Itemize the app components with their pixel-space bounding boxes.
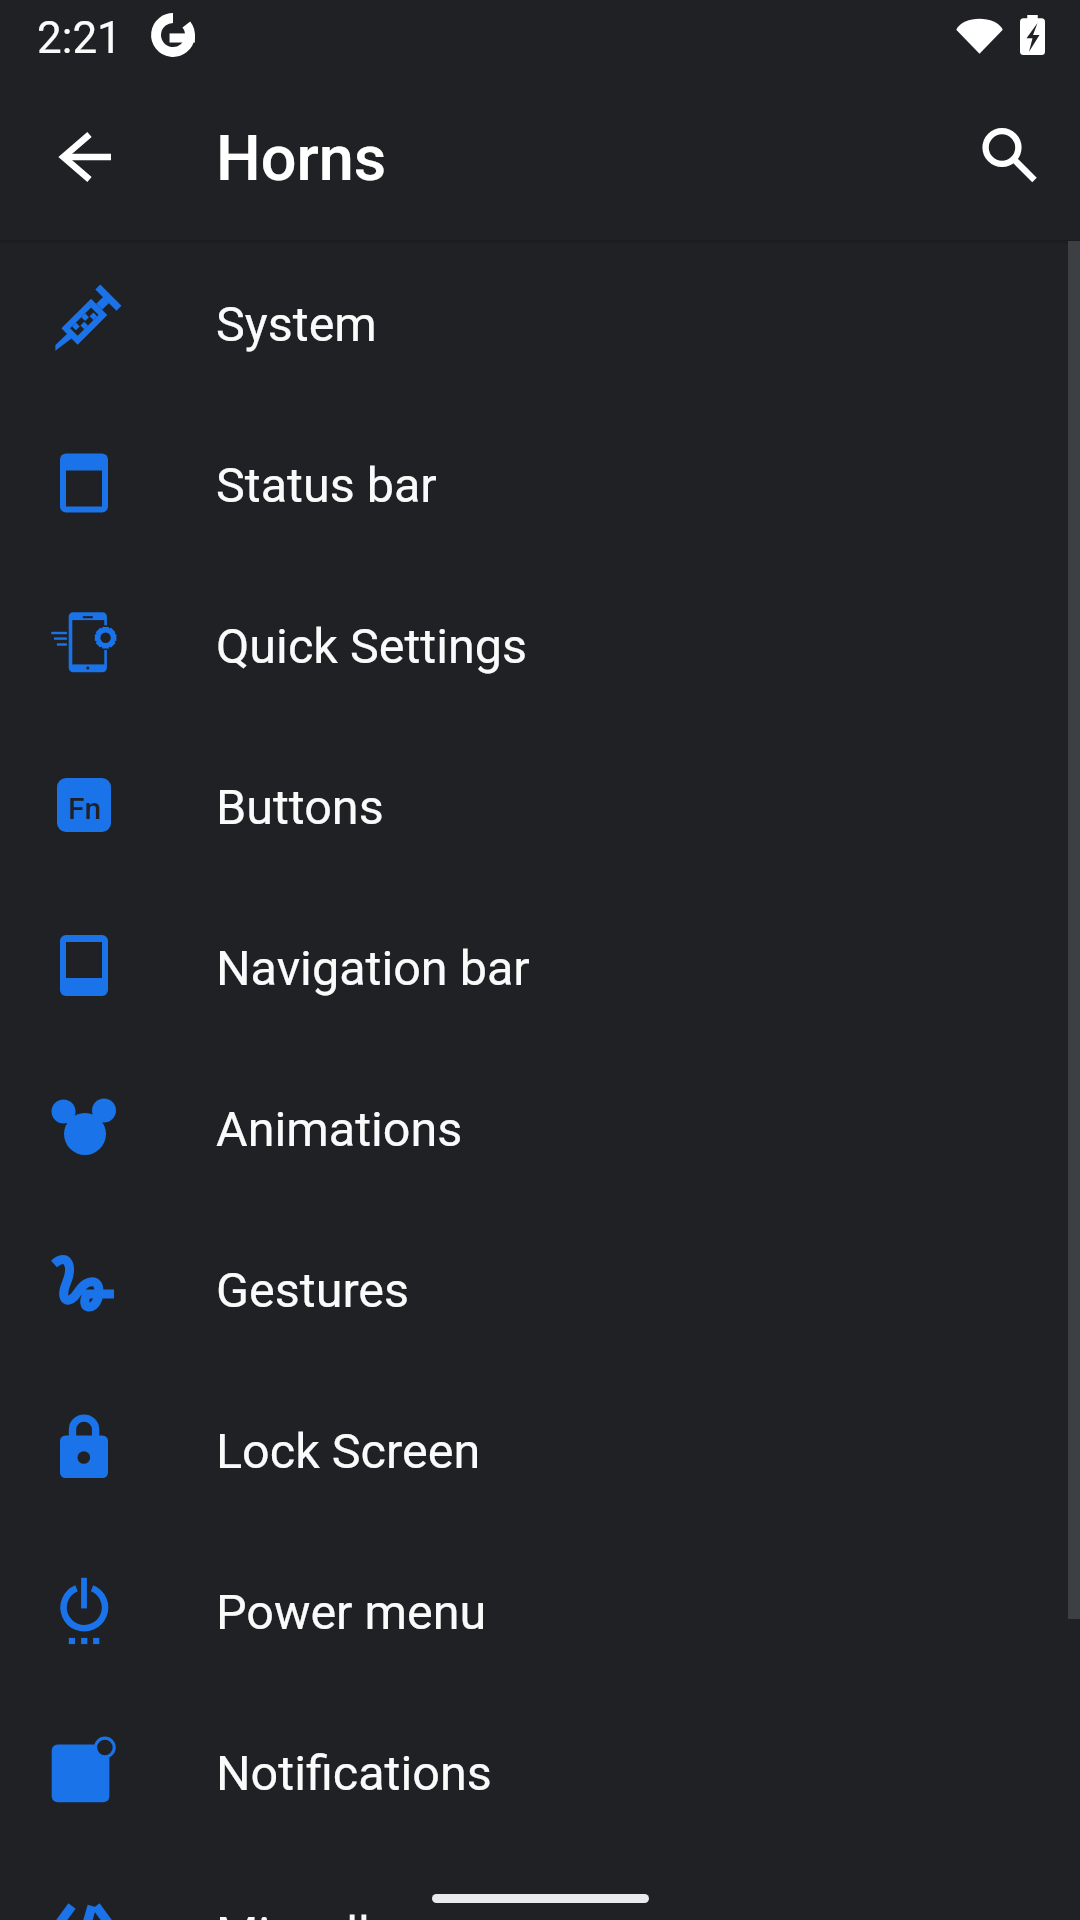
staticText: Fn — [68, 791, 102, 826]
button[interactable]: Lock Screen — [0, 1368, 1080, 1529]
button[interactable]: Navigation bar — [0, 885, 1080, 1046]
button[interactable]: Miscellaneous — [0, 1851, 1080, 1920]
button[interactable]: Search — [945, 90, 1077, 222]
button[interactable]: Fn — [0, 724, 1080, 885]
staticText: Lock Screen — [216, 1423, 481, 1480]
button[interactable]: Notifications — [0, 1690, 1080, 1851]
staticText: Gestures — [216, 1262, 410, 1319]
staticText: Power menu — [216, 1584, 487, 1641]
button[interactable]: Back — [21, 91, 153, 223]
staticText: Animations — [216, 1101, 463, 1158]
staticText: Miscellaneous — [216, 1906, 529, 1920]
button[interactable]: System — [0, 241, 1080, 402]
button[interactable]: Animations — [0, 1046, 1080, 1207]
staticText: Notifications — [216, 1745, 492, 1802]
staticText: Navigation bar — [216, 940, 530, 997]
button[interactable]: Gestures — [0, 1207, 1080, 1368]
button[interactable]: Status bar — [0, 402, 1080, 563]
staticText: Quick Settings — [216, 618, 527, 675]
staticText: Status bar — [216, 457, 437, 514]
staticText: Horns — [216, 122, 387, 196]
staticText: 2:21 — [37, 12, 122, 64]
staticText: System — [216, 296, 377, 353]
button[interactable]: Power menu — [0, 1529, 1080, 1690]
staticText: Buttons — [216, 779, 384, 836]
button[interactable]: Quick Settings — [0, 563, 1080, 724]
